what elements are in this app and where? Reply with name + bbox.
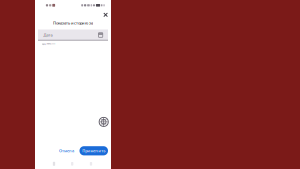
button[interactable]: Recents bbox=[85, 159, 97, 169]
staticText: Отмена bbox=[59, 148, 74, 153]
staticText: ДД.ММ.ГГГГ bbox=[41, 42, 55, 45]
staticText: Дата bbox=[43, 32, 52, 38]
button[interactable]: Отмена bbox=[56, 146, 76, 155]
button[interactable]: Close bbox=[101, 10, 111, 20]
button[interactable]: Language bbox=[98, 116, 110, 128]
button[interactable]: Применить bbox=[79, 146, 108, 155]
staticText: Применить bbox=[82, 148, 105, 153]
button[interactable]: Back bbox=[48, 159, 60, 169]
staticText: Показать историю за bbox=[53, 20, 93, 25]
button[interactable]: Home bbox=[66, 159, 78, 169]
